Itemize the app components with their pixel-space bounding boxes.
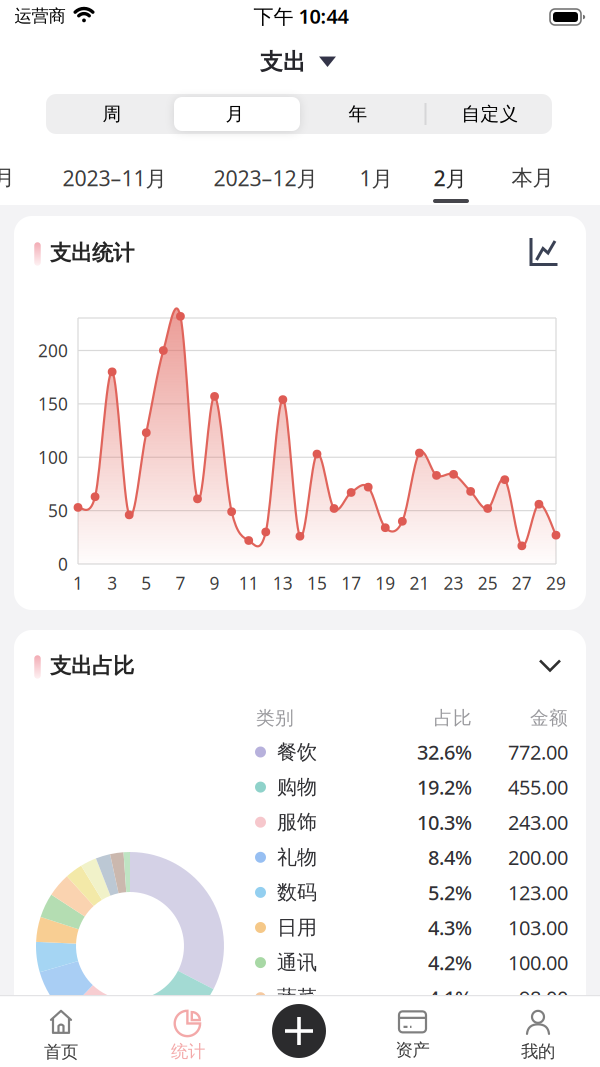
button[interactable]: 年: [298, 94, 418, 134]
staticText: 9: [210, 571, 220, 594]
staticText: 13: [273, 571, 293, 594]
staticText: 150: [38, 392, 68, 415]
staticText: 10.3%: [417, 809, 472, 835]
staticText: 周: [102, 102, 121, 125]
staticText: 0: [58, 552, 68, 575]
staticText: 服饰: [277, 810, 317, 834]
staticText: 餐饮: [277, 740, 317, 764]
staticText: 27: [512, 571, 532, 594]
button[interactable]: 本月: [511, 165, 553, 191]
staticText: 8.4%: [428, 844, 472, 871]
staticText: 15: [307, 571, 327, 594]
staticText: 统计: [171, 1041, 205, 1062]
staticText: 购物: [277, 775, 317, 799]
staticText: 200: [38, 339, 68, 362]
staticText: 类别: [256, 706, 294, 729]
staticText: 4.2%: [428, 949, 472, 976]
staticText: 运营商: [14, 5, 65, 27]
staticText: 50: [48, 499, 68, 522]
staticText: 数码: [277, 880, 317, 905]
staticText: 25: [478, 571, 498, 594]
staticText: 772.00: [508, 739, 568, 765]
staticText: 金额: [530, 706, 568, 729]
button[interactable]: 我的: [521, 1010, 555, 1062]
staticText: 11: [239, 571, 259, 594]
staticText: 3: [107, 571, 117, 594]
button[interactable]: 收起: [540, 660, 560, 671]
staticText: 7: [175, 571, 185, 594]
staticText: 32.6%: [417, 739, 472, 765]
staticText: 17: [341, 571, 361, 594]
staticText: 4.3%: [428, 914, 472, 941]
button[interactable]: 资产: [395, 1011, 429, 1061]
staticText: 455.00: [508, 774, 568, 800]
staticText: 1月: [359, 164, 392, 192]
staticText: 103.00: [508, 914, 568, 941]
button[interactable]: 首页: [44, 1009, 78, 1063]
button[interactable]: 2月: [433, 164, 466, 192]
staticText: 1: [73, 571, 83, 594]
staticText: 自定义: [461, 102, 518, 125]
staticText: 100.00: [508, 949, 568, 976]
staticText: 月: [225, 102, 244, 125]
staticText: 礼物: [277, 845, 317, 870]
button[interactable]: 支出: [260, 48, 336, 76]
staticText: 2023–11月: [62, 164, 166, 192]
staticText: 5: [141, 571, 151, 594]
button[interactable]: 2023–12月: [213, 164, 317, 192]
staticText: 通讯: [277, 950, 317, 975]
staticText: 首页: [44, 1041, 78, 1063]
staticText: 支出统计: [50, 240, 134, 266]
staticText: 月: [0, 165, 14, 191]
staticText: 下午 10:44: [253, 3, 348, 29]
staticText: 200.00: [508, 844, 568, 871]
staticText: 我的: [521, 1041, 555, 1062]
staticText: 支出占比: [50, 653, 134, 679]
button[interactable]: 1月: [359, 164, 392, 192]
staticText: 蔬菜: [277, 985, 317, 1010]
button[interactable]: 自定义: [430, 94, 550, 134]
staticText: 5.2%: [428, 879, 472, 906]
staticText: 本月: [511, 165, 553, 191]
staticText: 243.00: [508, 809, 568, 835]
staticText: 年: [348, 102, 367, 125]
button[interactable]: 周: [52, 94, 172, 134]
staticText: 2023–12月: [213, 164, 317, 192]
staticText: 4.1%: [428, 984, 472, 1011]
staticText: 占比: [434, 706, 472, 729]
staticText: 资产: [395, 1039, 429, 1061]
staticText: 123.00: [508, 879, 568, 906]
button[interactable]: 2023–11月: [62, 164, 166, 192]
staticText: 19.2%: [417, 774, 472, 800]
button[interactable]: 月: [175, 94, 295, 134]
staticText: 29: [546, 571, 566, 594]
staticText: 19: [375, 571, 395, 594]
button[interactable]: 记一笔: [272, 1004, 326, 1058]
staticText: 2月: [433, 164, 466, 192]
staticText: 23: [444, 571, 464, 594]
button[interactable]: 统计: [171, 1010, 205, 1062]
staticText: 100: [38, 446, 68, 469]
button[interactable]: 切换图表: [529, 238, 558, 266]
staticText: 98.00: [519, 984, 568, 1011]
staticText: 日用: [277, 915, 317, 940]
staticText: 21: [409, 571, 429, 594]
staticText: 支出: [260, 48, 306, 76]
